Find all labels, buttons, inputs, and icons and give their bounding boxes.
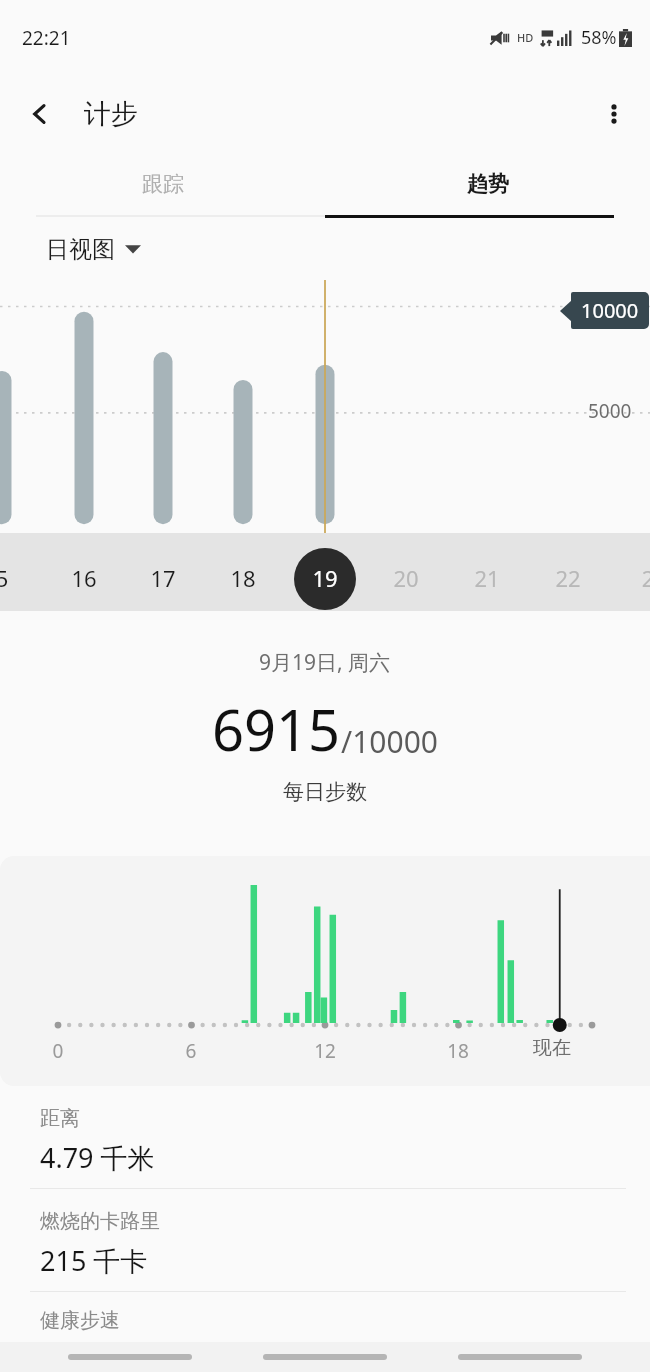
button[interactable]: 22 <box>0 533 650 618</box>
button[interactable]: Back <box>455 1342 585 1372</box>
button[interactable]: 日视图 <box>46 218 650 280</box>
button[interactable]: More options <box>588 88 640 140</box>
staticText: 5000 <box>588 398 632 424</box>
staticText: 16 <box>68 563 100 593</box>
staticText: 现在 <box>522 1036 582 1060</box>
staticText: 每日步数 <box>283 779 367 805</box>
button[interactable]: 2 <box>0 533 650 618</box>
staticText: 6 <box>171 1038 211 1064</box>
staticText: 10000 <box>581 297 639 324</box>
staticText: 18 <box>438 1038 478 1064</box>
staticText: 9月19日, 周六 <box>259 648 391 677</box>
button[interactable]: 趋势 <box>325 153 650 215</box>
staticText: 5 <box>0 563 18 593</box>
staticText: 日视图 <box>46 235 115 264</box>
button[interactable]: 健康步速 <box>0 1292 650 1338</box>
button[interactable]: 距离 <box>0 1086 650 1188</box>
button[interactable]: 燃烧的卡路里 <box>0 1189 650 1291</box>
staticText: 距离 <box>40 1106 80 1131</box>
staticText: 6915 <box>212 691 341 767</box>
staticText: 18 <box>227 563 259 593</box>
staticText: 健康步速 <box>40 1308 120 1333</box>
staticText: 12 <box>305 1038 345 1064</box>
staticText: 20 <box>390 563 422 593</box>
staticText: 17 <box>147 563 179 593</box>
staticText: 燃烧的卡路里 <box>40 1209 160 1234</box>
staticText: 趋势 <box>467 171 509 197</box>
staticText: 计步 <box>84 97 138 131</box>
button[interactable]: 20 <box>0 533 650 618</box>
button[interactable]: Back <box>14 88 66 140</box>
button[interactable]: 21 <box>0 533 650 618</box>
staticText: 58% <box>581 25 617 50</box>
button[interactable]: 跟踪 <box>0 153 325 215</box>
staticText: 22:21 <box>22 25 71 51</box>
staticText: 22 <box>552 563 584 593</box>
staticText: 0 <box>38 1038 78 1064</box>
staticText: HD <box>517 30 534 45</box>
staticText: /10000 <box>341 721 438 762</box>
staticText: 跟踪 <box>142 171 184 197</box>
button[interactable]: Recents <box>65 1342 195 1372</box>
staticText: 215 千卡 <box>40 1242 148 1279</box>
button[interactable]: 17 <box>0 533 650 618</box>
staticText: 4.79 千米 <box>40 1139 155 1176</box>
staticText: 2 <box>632 563 650 593</box>
staticText: 21 <box>471 563 503 593</box>
button[interactable]: 0 <box>0 856 650 1086</box>
button[interactable]: Home <box>260 1342 390 1372</box>
button[interactable]: 5 <box>0 533 650 618</box>
button[interactable]: 16 <box>0 533 650 618</box>
button[interactable]: 18 <box>0 533 650 618</box>
staticText: 19 <box>309 563 341 593</box>
